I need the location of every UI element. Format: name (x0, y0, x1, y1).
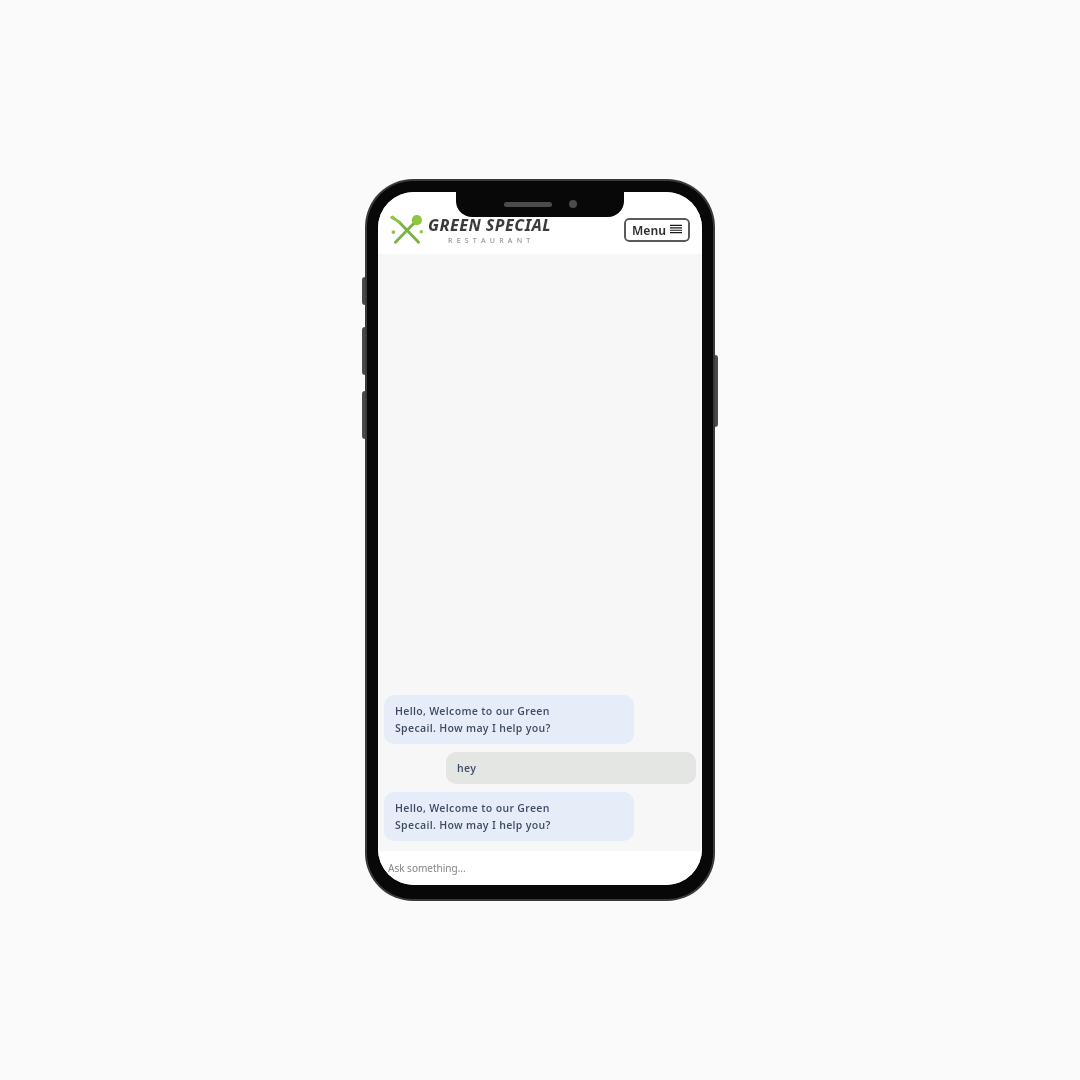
staticText: Menu (632, 222, 667, 238)
staticText: R E S T A U R A N T (448, 236, 532, 246)
staticText: Hello, Welcome to our Green Specail. How… (395, 801, 551, 832)
button[interactable]: Hello, Welcome to our Green Specail. How… (384, 695, 634, 744)
button[interactable]: Menu (624, 218, 690, 242)
staticText: Hello, Welcome to our Green Specail. How… (395, 704, 551, 735)
button[interactable]: Ask something... (378, 851, 702, 885)
staticText: GREEN SPECIAL (428, 214, 552, 236)
staticText: Ask something... (388, 861, 466, 875)
button[interactable]: hey (446, 752, 696, 784)
staticText: hey (457, 761, 477, 775)
button[interactable]: Hello, Welcome to our Green Specail. How… (384, 792, 634, 841)
